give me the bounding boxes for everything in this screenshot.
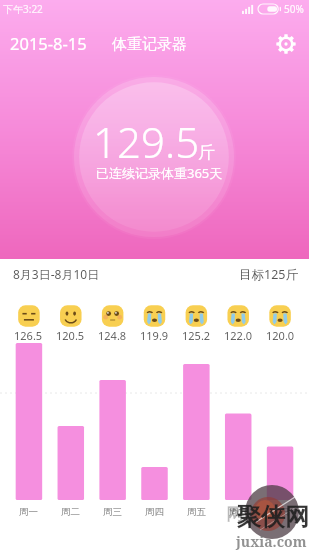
staticText: 下午3:22 bbox=[3, 2, 43, 16]
staticText: 周一 bbox=[19, 506, 38, 518]
staticText: 129.5 bbox=[93, 113, 200, 170]
staticText: juxia.com bbox=[236, 532, 307, 550]
staticText: 已连续记录体重365天 bbox=[96, 164, 223, 182]
staticText: 120.0 bbox=[266, 328, 295, 343]
staticText: 周五 bbox=[187, 506, 206, 518]
staticText: 斤 bbox=[198, 142, 215, 163]
staticText: 2015-8-15 bbox=[10, 32, 87, 54]
staticText: 周四 bbox=[145, 506, 164, 518]
staticText: 124.8 bbox=[98, 328, 127, 343]
staticText: 目标125斤 bbox=[239, 266, 298, 283]
staticText: 周三 bbox=[103, 506, 122, 518]
staticText: 122.0 bbox=[224, 328, 253, 343]
staticText: 120.5 bbox=[56, 328, 85, 343]
staticText: 周六 bbox=[229, 506, 248, 518]
staticText: 50% bbox=[284, 2, 304, 16]
staticText: 体重记录器 bbox=[112, 35, 187, 54]
staticText: 8月3日-8月10日 bbox=[13, 266, 100, 282]
staticText: 聚侠网 bbox=[237, 502, 309, 532]
staticText: 119.9 bbox=[140, 328, 169, 343]
staticText: 125.2 bbox=[182, 328, 211, 343]
staticText: 126.5 bbox=[14, 328, 43, 343]
staticText: 周二 bbox=[61, 506, 80, 518]
staticText: 周日 bbox=[271, 506, 290, 518]
button[interactable]: Settings bbox=[276, 34, 296, 54]
staticText: 网 bbox=[226, 504, 243, 525]
